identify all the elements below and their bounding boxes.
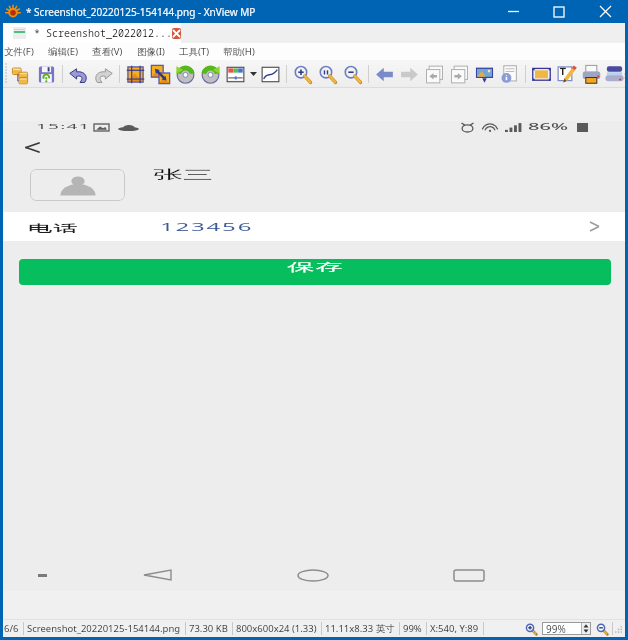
button[interactable]: 查看(V) — [85, 43, 130, 60]
button[interactable]: Fullscreen — [529, 61, 554, 87]
button[interactable]: Avatar — [30, 169, 125, 201]
button[interactable]: Info — [497, 61, 522, 87]
staticText: 73.30 KB — [189, 622, 228, 635]
button[interactable]: More adjust — [248, 61, 258, 87]
staticText: 99% — [403, 622, 422, 635]
button[interactable]: Last — [447, 61, 472, 87]
staticText: 编辑(E) — [48, 45, 78, 58]
button[interactable]: Maximize — [536, 0, 582, 23]
button[interactable]: Crop — [123, 61, 148, 87]
staticText: 123456 — [160, 221, 254, 234]
button[interactable]: Home — [235, 560, 391, 590]
button[interactable]: Slideshow — [472, 61, 497, 87]
button[interactable]: Close tab — [172, 28, 181, 39]
staticText: 99% — [546, 622, 566, 635]
staticText: 帮助(H) — [223, 45, 255, 58]
staticText: 11.11x8.33 英寸 — [325, 622, 395, 635]
button[interactable]: Scan — [604, 61, 624, 87]
staticText: 查看(V) — [92, 45, 123, 58]
button[interactable]: Hide keyboard — [27, 560, 57, 590]
button[interactable]: Recents — [391, 560, 547, 590]
button[interactable]: 文件(F) — [0, 43, 41, 60]
button[interactable]: Browse — [9, 61, 34, 87]
button[interactable]: Draw — [554, 61, 579, 87]
button[interactable]: Undo — [66, 61, 91, 87]
button[interactable]: Adjust — [223, 61, 248, 87]
button[interactable]: Minimize — [490, 0, 536, 23]
staticText: 张三 — [153, 167, 213, 183]
button[interactable]: 图像(I) — [130, 43, 172, 60]
button[interactable]: Zoom out — [340, 61, 365, 87]
button[interactable]: Print — [579, 61, 604, 87]
button[interactable]: Resize — [148, 61, 173, 87]
button[interactable]: 保存 — [19, 259, 611, 285]
staticText: X:540, Y:89 — [430, 622, 479, 635]
button[interactable]: Rotate right — [198, 61, 223, 87]
button[interactable]: Rotate left — [173, 61, 198, 87]
button[interactable]: 帮助(H) — [216, 43, 262, 60]
button[interactable]: First — [422, 61, 447, 87]
button[interactable]: 99% — [542, 622, 591, 635]
staticText: Screenshot_20220125-154144.png — [27, 622, 181, 635]
button[interactable]: Back — [14, 138, 50, 156]
button[interactable]: Zoom 1:1 — [315, 61, 340, 87]
button[interactable]: Previous — [372, 61, 397, 87]
staticText: 图像(I) — [137, 45, 165, 58]
staticText: 电话 — [27, 223, 78, 235]
button[interactable]: Zoom out — [595, 622, 609, 636]
staticText: 15:41 — [36, 120, 91, 131]
button[interactable]: Zoom in — [524, 622, 538, 636]
button[interactable]: Next — [397, 61, 422, 87]
button[interactable]: 电话 — [3, 212, 625, 241]
staticText: 保存 — [287, 260, 343, 274]
staticText: 86% — [528, 121, 568, 132]
button[interactable]: Close — [582, 0, 628, 23]
button[interactable]: Redo — [91, 61, 116, 87]
button[interactable]: Zoom in — [290, 61, 315, 87]
button[interactable]: Save — [34, 61, 59, 87]
button[interactable]: 工具(T) — [172, 43, 216, 60]
button[interactable]: * Screenshot_2022012... — [3, 23, 181, 43]
staticText: 工具(T) — [179, 45, 209, 58]
button[interactable]: Back — [80, 560, 235, 590]
button[interactable]: Curves — [258, 61, 283, 87]
staticText: 文件(F) — [4, 45, 34, 58]
staticText: * Screenshot_20220125-154144.png - XnVie… — [26, 5, 256, 19]
staticText: 800x600x24 (1.33) — [236, 622, 317, 635]
staticText: * Screenshot_2022012... — [34, 26, 172, 40]
staticText: 6/6 — [4, 622, 19, 635]
button[interactable]: 编辑(E) — [41, 43, 85, 60]
